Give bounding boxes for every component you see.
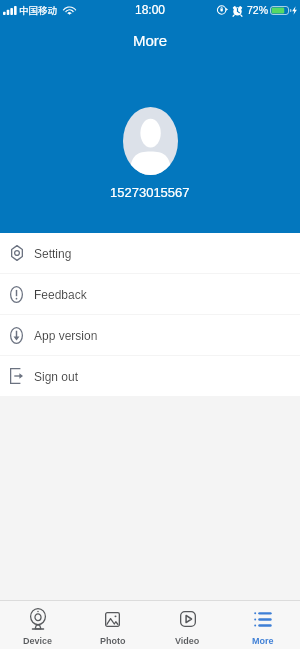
staticText: Device	[23, 636, 53, 646]
staticText: Feedback	[34, 288, 87, 301]
button[interactable]: More	[225, 601, 300, 649]
staticText: App version	[34, 329, 98, 342]
button[interactable]: Setting	[0, 233, 300, 273]
staticText: 72%	[247, 4, 269, 16]
staticText: Photo	[100, 636, 126, 646]
staticText: Video	[175, 636, 200, 646]
button[interactable]: Video	[150, 601, 225, 649]
staticText: Sign out	[34, 370, 79, 383]
button[interactable]: Device	[0, 601, 75, 649]
button[interactable]: App version	[0, 315, 300, 355]
staticText: 15273015567	[110, 185, 190, 200]
button[interactable]: Sign out	[0, 356, 300, 396]
button[interactable]: Feedback	[0, 274, 300, 314]
staticText: More	[252, 636, 274, 646]
button[interactable]: Photo	[75, 601, 150, 649]
staticText: Setting	[34, 247, 72, 260]
staticText: More	[133, 32, 168, 49]
staticText: 中国移动	[19, 3, 58, 17]
staticText: 18:00	[135, 3, 166, 16]
